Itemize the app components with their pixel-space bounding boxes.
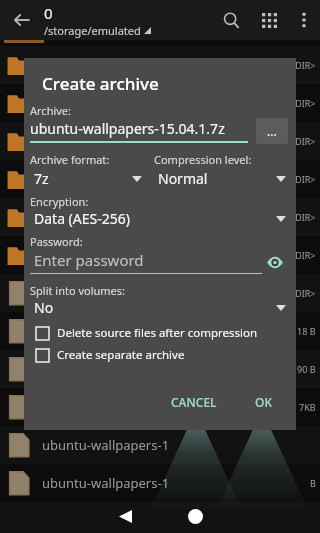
staticText: <DIR> <box>290 97 316 109</box>
staticText: OK <box>255 394 272 410</box>
staticText: ... <box>267 123 277 139</box>
staticText: <DIR> <box>290 287 316 299</box>
staticText: Delete source files after compression <box>57 325 258 341</box>
staticText: <DIR> <box>290 249 316 261</box>
button[interactable]: Home <box>173 499 217 533</box>
staticText: ubuntu-wallpapers-1 <box>42 474 170 492</box>
button[interactable]: Show password <box>262 249 288 275</box>
staticText: 90 B <box>297 363 316 375</box>
staticText: 0 <box>44 3 53 23</box>
button[interactable]: Browse <box>256 118 288 144</box>
staticText: Split into volumes: <box>30 283 126 298</box>
staticText: Create separate archive <box>57 347 185 363</box>
button[interactable]: Search <box>212 0 250 40</box>
button[interactable]: No <box>30 298 288 317</box>
staticText: Archive: <box>30 103 72 118</box>
button[interactable]: Create separate archive <box>36 347 288 363</box>
staticText: 7KB <box>299 401 316 413</box>
button[interactable]: Back <box>0 0 44 40</box>
staticText: Data (AES-256) <box>34 209 276 228</box>
staticText: Create archive <box>42 72 159 95</box>
staticText: <DIR> <box>290 211 316 223</box>
staticText: 7z <box>34 169 132 188</box>
button[interactable]: Enter password <box>30 249 288 275</box>
button[interactable]: Delete source files after compression <box>36 325 288 341</box>
button[interactable]: CANCEL <box>161 388 227 416</box>
button[interactable]: Normal <box>154 169 288 188</box>
button[interactable]: Back <box>103 499 147 533</box>
staticText: Compression level: <box>154 152 252 167</box>
button[interactable]: 7z <box>30 169 144 188</box>
staticText: ubuntu-wallpapers-15.04.1.7z <box>30 119 225 138</box>
staticText: /storage/emulated <box>44 23 141 38</box>
button[interactable]: OK <box>245 388 282 416</box>
button[interactable]: Data (AES-256) <box>30 209 288 228</box>
staticText: <DIR> <box>290 173 316 185</box>
staticText: No <box>34 298 276 317</box>
staticText: Enter password <box>34 250 144 270</box>
staticText: CANCEL <box>171 394 217 410</box>
staticText: Password: <box>30 234 83 249</box>
button[interactable]: More options <box>288 0 320 40</box>
staticText: ubuntu-wallpapers-1 <box>42 436 170 454</box>
staticText: <DIR> <box>290 59 316 71</box>
staticText: Archive format: <box>30 152 110 167</box>
staticText: <DIR> <box>290 135 316 147</box>
staticText: Normal <box>158 169 276 188</box>
staticText: B <box>310 477 316 489</box>
staticText: Encryption: <box>30 194 89 209</box>
button[interactable]: Grid view <box>250 0 288 40</box>
staticText: 18 B <box>297 325 316 337</box>
